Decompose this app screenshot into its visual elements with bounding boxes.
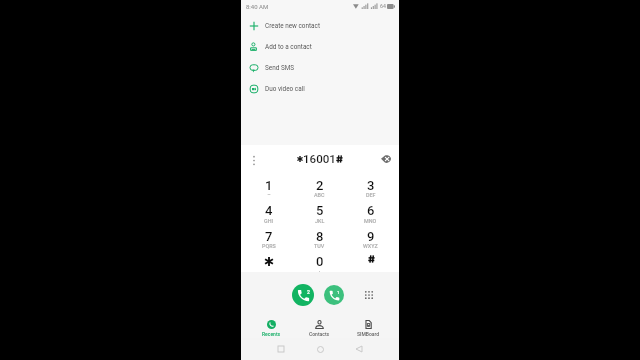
- staticText: 6: [367, 203, 375, 218]
- button[interactable]: Contacts: [295, 312, 344, 338]
- button[interactable]: Dialpad: [362, 288, 375, 301]
- staticText: Contacts: [309, 331, 330, 337]
- staticText: Send SMS: [265, 64, 295, 72]
- staticText: Recents: [262, 331, 281, 337]
- staticText: 0: [316, 254, 324, 269]
- button[interactable]: Call with SIM 2: [292, 284, 314, 306]
- button[interactable]: SIMBoard: [344, 312, 393, 338]
- button[interactable]: 1: [244, 170, 294, 196]
- button[interactable]: Home: [308, 338, 332, 360]
- staticText: MNO: [364, 218, 377, 224]
- button[interactable]: Add to a contact: [241, 36, 399, 57]
- staticText: 2: [316, 178, 324, 193]
- staticText: 7: [265, 229, 273, 244]
- staticText: WXYZ: [363, 243, 378, 249]
- staticText: 16001: [303, 152, 336, 166]
- staticText: 8: [316, 229, 324, 244]
- button[interactable]: 4: [244, 196, 294, 221]
- staticText: TUV: [314, 243, 325, 249]
- button[interactable]: Backspace: [379, 152, 393, 166]
- button[interactable]: 7: [244, 221, 294, 247]
- staticText: 9: [367, 229, 375, 244]
- button[interactable]: 2: [294, 170, 345, 196]
- staticText: Add to a contact: [265, 43, 312, 51]
- button[interactable]: Create new contact: [241, 15, 399, 36]
- button[interactable]: More options: [248, 154, 260, 166]
- staticText: Duo video call: [265, 85, 305, 93]
- button[interactable]: [345, 247, 396, 272]
- staticText: ABC: [314, 192, 325, 198]
- button[interactable]: [244, 247, 294, 272]
- button[interactable]: Recent apps: [269, 338, 293, 360]
- staticText: 4: [265, 203, 273, 218]
- staticText: 8:40 AM: [246, 3, 269, 10]
- staticText: 2: [307, 289, 310, 295]
- button[interactable]: Send SMS: [241, 57, 399, 78]
- button[interactable]: 5: [294, 196, 345, 221]
- staticText: 3: [367, 178, 375, 193]
- staticText: Create new contact: [265, 22, 321, 30]
- staticText: PQRS: [262, 243, 276, 249]
- staticText: DEF: [366, 192, 376, 198]
- staticText: +: [318, 269, 322, 275]
- staticText: 1: [337, 290, 340, 295]
- button[interactable]: Call with SIM 1: [324, 285, 344, 305]
- staticText: GHI: [264, 218, 274, 224]
- staticText: 1: [265, 178, 273, 193]
- staticText: JKL: [315, 218, 325, 224]
- button[interactable]: Back: [347, 338, 371, 360]
- staticText: 64: [380, 3, 386, 9]
- button[interactable]: 3: [345, 170, 396, 196]
- button[interactable]: 8: [294, 221, 345, 247]
- staticText: SIMBoard: [357, 331, 380, 337]
- staticText: 5: [316, 203, 324, 218]
- button[interactable]: Recents: [247, 312, 295, 338]
- button[interactable]: Duo video call: [241, 78, 399, 99]
- button[interactable]: 6: [345, 196, 396, 221]
- button[interactable]: 0: [294, 247, 345, 272]
- button[interactable]: 9: [345, 221, 396, 247]
